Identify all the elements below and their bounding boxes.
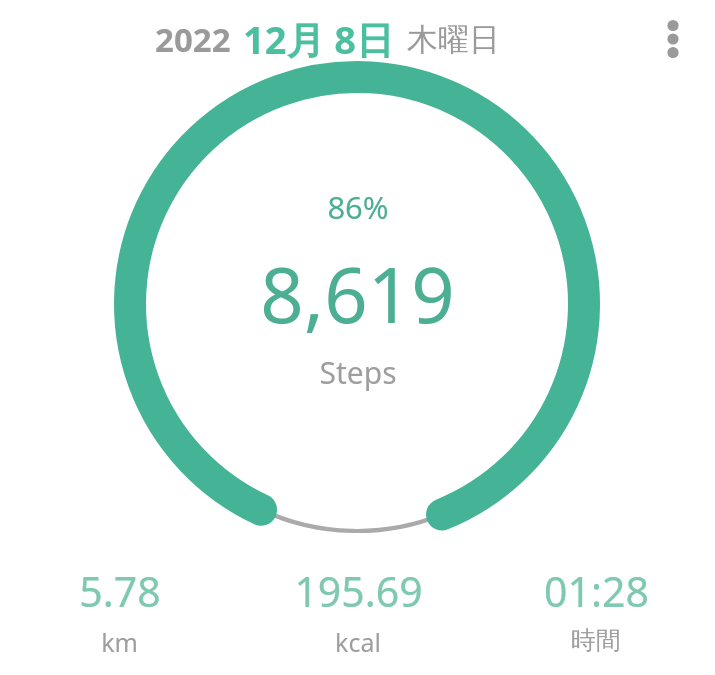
staticText: 木曜日	[407, 20, 500, 59]
staticText: 5.78	[79, 563, 161, 619]
staticText: kcal	[335, 625, 381, 659]
button[interactable]: 5.78	[0, 561, 239, 661]
button[interactable]: 195.69	[239, 561, 477, 661]
staticText: km	[101, 625, 138, 659]
button[interactable]: 86%	[0, 186, 715, 393]
staticText: 8,619	[260, 242, 455, 346]
staticText: Steps	[319, 352, 397, 393]
staticText: 01:28	[544, 563, 649, 619]
staticText: 時間	[571, 625, 621, 656]
staticText: 195.69	[294, 563, 423, 619]
staticText: 86%	[327, 186, 389, 228]
button[interactable]: 01:28	[477, 561, 715, 658]
staticText: 12月 8日	[243, 13, 395, 65]
staticText: 2022	[155, 17, 231, 62]
button[interactable]: More options	[645, 11, 701, 67]
